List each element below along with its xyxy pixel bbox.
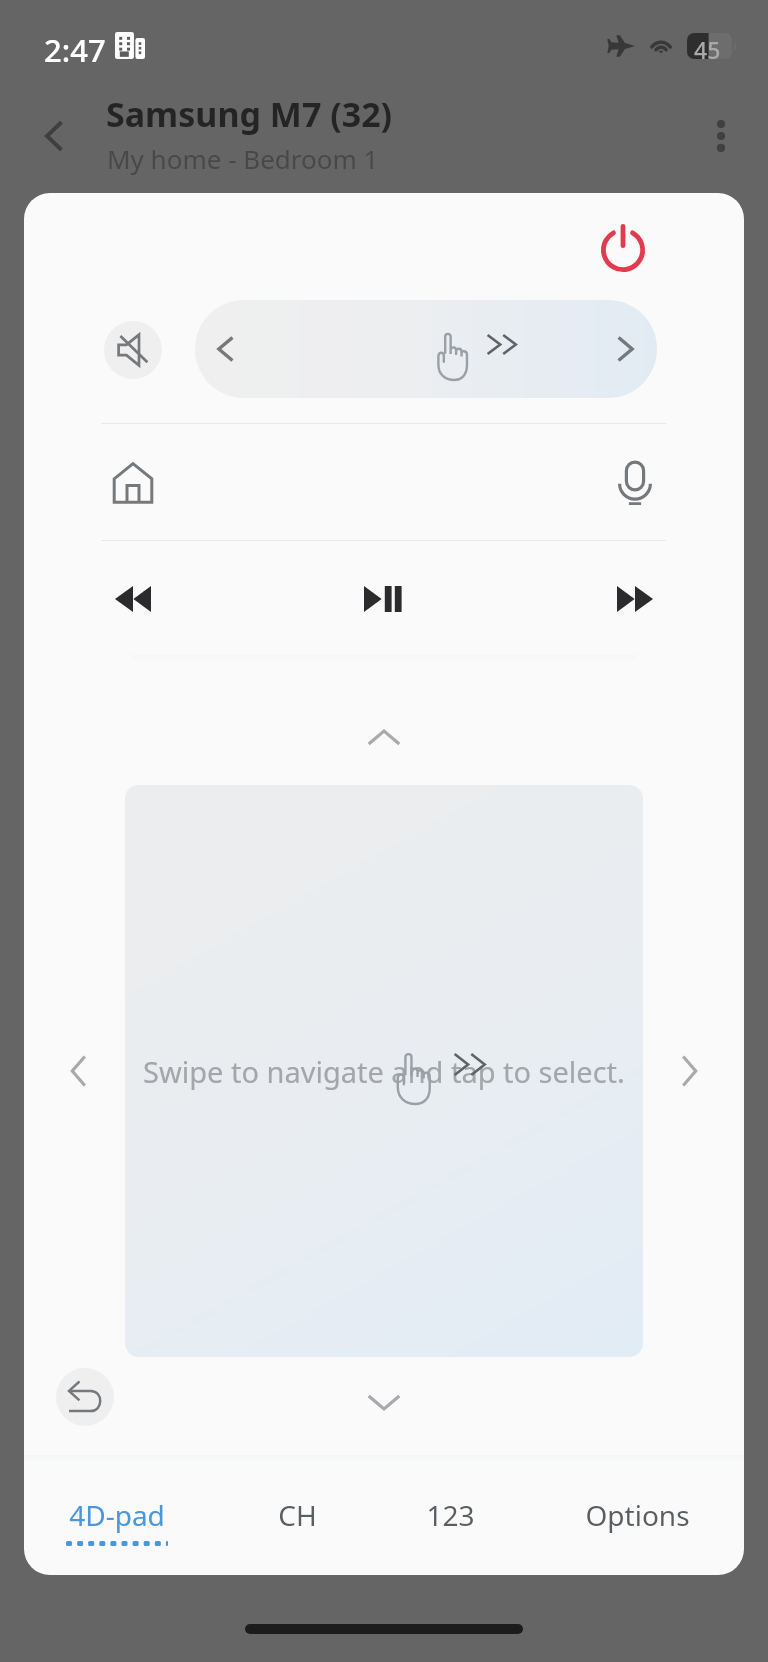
button[interactable]: Fast forward xyxy=(607,571,663,627)
button[interactable]: Up xyxy=(368,727,400,747)
button[interactable]: Right xyxy=(677,1053,703,1089)
button[interactable]: Mute xyxy=(104,321,162,379)
button[interactable]: Down xyxy=(368,1393,400,1413)
button[interactable]: 4D-pad xyxy=(66,1455,168,1575)
button[interactable]: More options xyxy=(695,110,747,162)
staticText: 2:47 xyxy=(44,29,106,71)
button[interactable]: Options xyxy=(585,1455,690,1575)
button[interactable]: Back xyxy=(56,1368,114,1426)
button[interactable]: CH xyxy=(278,1455,317,1575)
staticText: 123 xyxy=(426,1496,475,1534)
button[interactable]: Back xyxy=(27,117,79,169)
button[interactable]: Rewind xyxy=(105,571,161,627)
staticText: My home - Bedroom 1 xyxy=(107,141,379,176)
button[interactable]: Play pause xyxy=(356,571,412,627)
staticText: Options xyxy=(585,1496,690,1534)
staticText: 4D-pad xyxy=(69,1496,165,1534)
staticText: Swipe to navigate and tap to select. xyxy=(143,1052,625,1091)
button[interactable]: Home xyxy=(105,455,161,511)
button[interactable]: Voice search xyxy=(607,455,663,511)
button[interactable]: Touchpad xyxy=(125,785,643,1357)
button[interactable]: Volume xyxy=(195,300,657,398)
staticText: Samsung M7 (32) xyxy=(106,91,393,137)
button[interactable]: Left xyxy=(65,1053,91,1089)
staticText: CH xyxy=(278,1496,317,1534)
button[interactable]: 123 xyxy=(426,1455,475,1575)
staticText: 45 xyxy=(694,34,721,60)
button[interactable]: Power xyxy=(589,213,657,281)
